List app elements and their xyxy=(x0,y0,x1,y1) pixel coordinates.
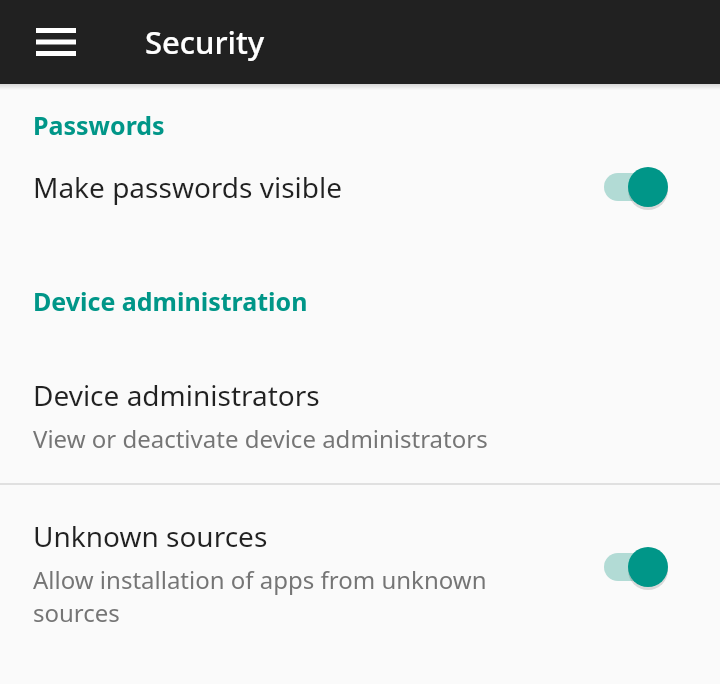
staticText: Security xyxy=(145,21,265,63)
staticText: Passwords xyxy=(33,108,720,142)
staticText: Unknown sources xyxy=(33,517,268,555)
button[interactable]: Make passwords visible xyxy=(0,142,720,232)
button[interactable]: Unknown sources xyxy=(0,485,720,649)
button[interactable] xyxy=(588,537,692,597)
staticText: Device administration xyxy=(33,284,720,318)
staticText: Allow installation of apps from unknown … xyxy=(33,563,578,629)
staticText: Make passwords visible xyxy=(33,168,588,206)
button[interactable] xyxy=(588,157,692,217)
button[interactable]: Open navigation menu xyxy=(22,8,90,76)
staticText: Device administrators xyxy=(33,376,320,414)
staticText: View or deactivate device administrators xyxy=(33,422,488,455)
button[interactable]: Device administrators xyxy=(0,318,720,483)
